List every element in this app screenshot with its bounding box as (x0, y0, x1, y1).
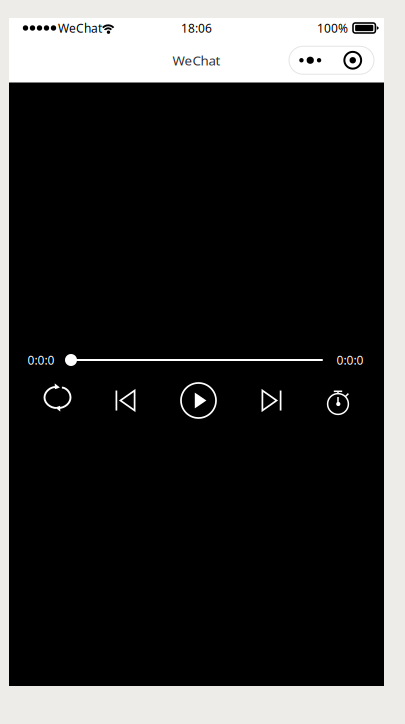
staticText: WeChat (58, 20, 102, 36)
staticText: 0:0:0 (27, 352, 54, 368)
button[interactable]: Previous track (102, 378, 148, 422)
staticText: 18:06 (181, 20, 212, 36)
button[interactable]: Sleep timer (315, 380, 361, 424)
button[interactable]: Play (175, 378, 221, 422)
button[interactable]: Next track (248, 378, 294, 422)
staticText: 100% (317, 20, 348, 36)
staticText: WeChat (172, 51, 220, 69)
button[interactable]: Repeat (34, 378, 80, 422)
button[interactable]: Close mini program (331, 46, 374, 74)
button[interactable]: More (289, 46, 331, 74)
staticText: 0:0:0 (336, 352, 363, 368)
